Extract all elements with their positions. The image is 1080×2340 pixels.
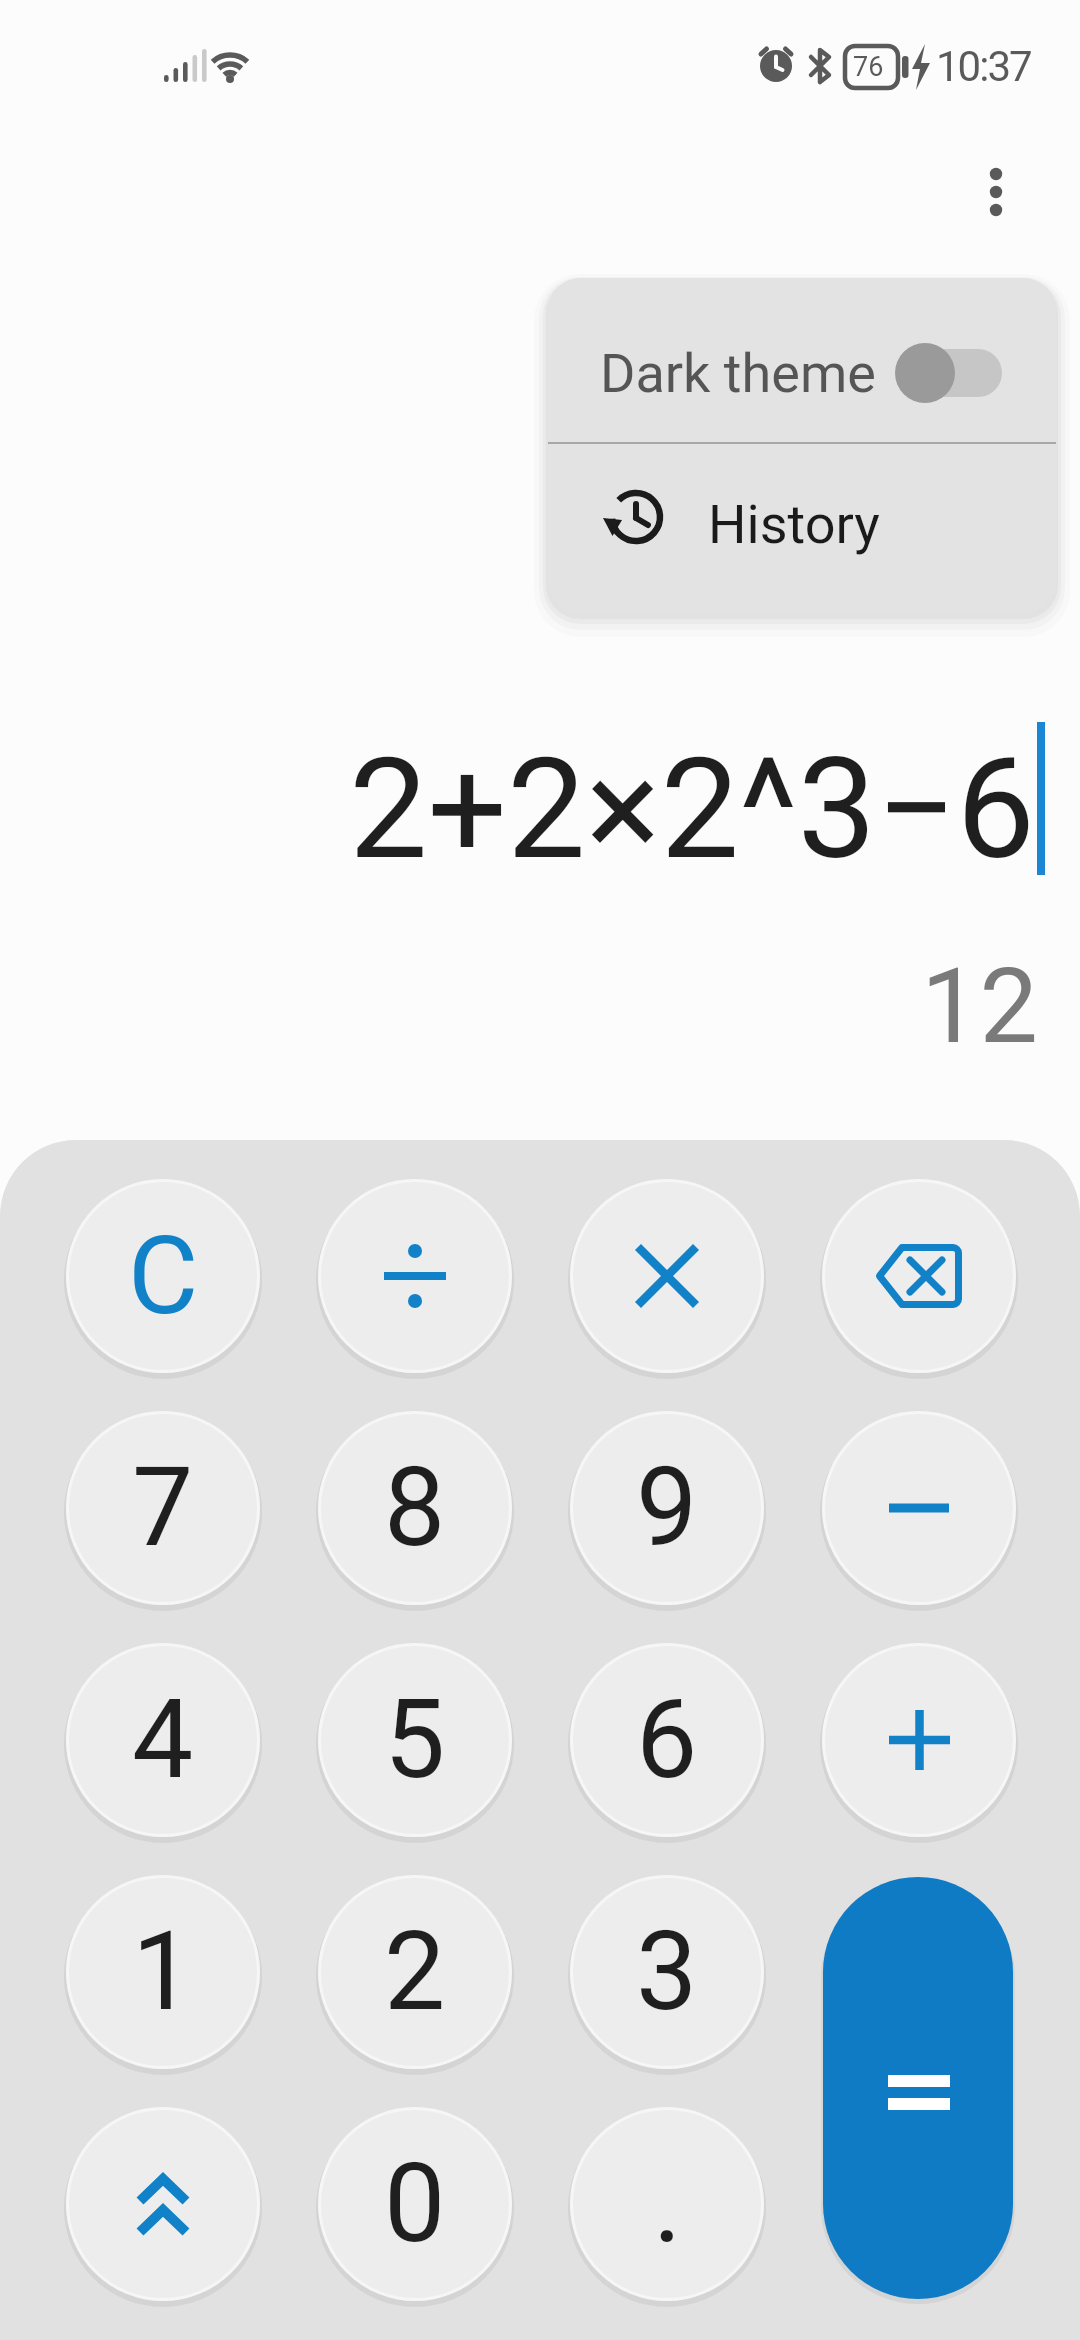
button[interactable]: 6 — [570, 1643, 764, 1837]
button[interactable]: C — [66, 1179, 260, 1373]
button[interactable] — [822, 1179, 1016, 1373]
button[interactable] — [822, 1643, 1016, 1837]
button[interactable] — [570, 1179, 764, 1373]
staticText: 9 — [636, 1444, 698, 1572]
staticText: 6 — [636, 1676, 698, 1804]
button[interactable]: 5 — [318, 1643, 512, 1837]
staticText: 76 — [853, 51, 884, 83]
staticText: 1 — [132, 1908, 194, 2036]
staticText: 12 — [0, 946, 1038, 1068]
button[interactable]: 9 — [570, 1411, 764, 1605]
button[interactable] — [318, 1179, 512, 1373]
button[interactable]: 0 — [318, 2107, 512, 2301]
button[interactable]: 8 — [318, 1411, 512, 1605]
staticText: 5 — [384, 1676, 446, 1804]
staticText: 7 — [132, 1444, 194, 1572]
button[interactable] — [823, 1877, 1013, 2299]
button[interactable] — [822, 1411, 1016, 1605]
button[interactable]: 7 — [66, 1411, 260, 1605]
button[interactable]: 2 — [318, 1875, 512, 2069]
staticText: 10:37 — [936, 42, 1031, 91]
staticText: 3 — [636, 1908, 698, 2036]
button[interactable] — [66, 2107, 260, 2301]
staticText: 8 — [384, 1444, 446, 1572]
button[interactable]: 3 — [570, 1875, 764, 2069]
button[interactable] — [966, 162, 1026, 222]
staticText: 0 — [384, 2140, 446, 2268]
button[interactable]: 4 — [66, 1643, 260, 1837]
staticText: 2 — [384, 1908, 446, 2036]
staticText: Dark theme — [600, 342, 876, 405]
staticText: 2+2×2^3−6 — [0, 727, 1035, 891]
staticText: . — [653, 2140, 682, 2268]
button[interactable]: Dark theme — [548, 278, 1056, 442]
button[interactable]: . — [570, 2107, 764, 2301]
staticText: History — [708, 493, 880, 556]
staticText: 4 — [132, 1676, 194, 1804]
staticText: C — [128, 1213, 199, 1340]
button[interactable]: 1 — [66, 1875, 260, 2069]
button[interactable]: History — [548, 444, 1056, 613]
